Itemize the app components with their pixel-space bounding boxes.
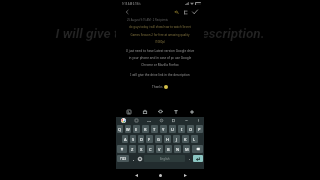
button[interactable]: Q [117, 125, 123, 133]
staticText: 9:15 AM 0.1K/s [122, 2, 141, 6]
button[interactable]: C [147, 145, 154, 153]
button[interactable]: Send [190, 7, 200, 17]
button[interactable]: J [173, 135, 180, 143]
button[interactable]: X [138, 145, 145, 153]
staticText: O [189, 127, 193, 132]
button[interactable]: Backspace [192, 145, 203, 153]
staticText: G [157, 137, 160, 142]
staticText: U [171, 127, 174, 132]
button[interactable]: Google [121, 118, 126, 123]
button[interactable]: Symbols [117, 155, 129, 162]
button[interactable]: U [169, 125, 176, 133]
staticText: Q [118, 127, 122, 132]
staticText: Thanks [152, 85, 164, 89]
button[interactable]: A [122, 135, 128, 143]
button[interactable]: Reply all [181, 8, 190, 17]
button[interactable]: F [146, 135, 153, 143]
button[interactable]: H [164, 135, 171, 143]
button[interactable]: Reply [172, 8, 181, 17]
staticText: J [176, 137, 178, 142]
staticText: Chrome or Mozilla Firefox [116, 63, 204, 67]
button[interactable]: Space [144, 155, 185, 162]
staticText: GIF [147, 119, 151, 122]
button[interactable]: L [191, 135, 198, 143]
staticText: U just need to have Latest version Googl… [116, 49, 204, 53]
staticText: M [185, 147, 189, 152]
button[interactable]: Insert image [124, 107, 133, 116]
staticText: . [189, 156, 190, 161]
staticText: S [132, 137, 135, 142]
button[interactable]: E [133, 125, 140, 133]
staticText: 25 August 9:15 AM · 2 Recipients [127, 18, 168, 22]
button[interactable]: R [142, 125, 149, 133]
button[interactable]: Recents [180, 170, 190, 180]
button[interactable]: Z [129, 145, 136, 153]
staticText: I will give the complete description. [0, 25, 320, 41]
staticText: Z [131, 147, 134, 152]
staticText: , [133, 156, 134, 161]
staticText: Games Season 2 for free at amazing quali… [116, 33, 204, 37]
staticText: W [126, 127, 130, 132]
staticText: L [193, 137, 196, 142]
button[interactable]: Emoji [136, 154, 143, 163]
staticText: English [160, 157, 170, 161]
button[interactable]: Home [155, 170, 165, 180]
button[interactable]: K [182, 135, 189, 143]
button[interactable]: More options [187, 107, 196, 116]
button[interactable]: Back [121, 6, 132, 17]
staticText: C [149, 147, 152, 152]
staticText: K [184, 137, 187, 142]
button[interactable]: D [138, 135, 144, 143]
button[interactable]: G [155, 135, 162, 143]
button[interactable]: Y [160, 125, 167, 133]
button[interactable]: Enter [193, 155, 203, 162]
staticText: N [176, 147, 180, 152]
staticText: (1080p) [116, 40, 204, 44]
staticText: P [198, 127, 201, 132]
staticText: B [167, 147, 170, 152]
button[interactable]: Clipboard [171, 118, 176, 123]
button[interactable]: M [183, 145, 190, 153]
staticText: I [181, 127, 183, 132]
staticText: E [135, 127, 138, 132]
button[interactable]: Settings [159, 118, 164, 123]
staticText: do guys today i will show how to watch S… [116, 25, 204, 29]
staticText: R [144, 127, 147, 132]
button[interactable]: Insert link [156, 107, 165, 116]
staticText: A [124, 137, 127, 142]
button[interactable]: W [125, 125, 131, 133]
button[interactable]: Comma [130, 154, 136, 163]
staticText: D [140, 137, 143, 142]
button[interactable]: I [178, 125, 185, 133]
staticText: T [153, 127, 156, 132]
button[interactable]: Shift [117, 145, 127, 153]
staticText: Y [162, 127, 165, 132]
staticText: ?123 [120, 157, 127, 161]
button[interactable]: B [165, 145, 172, 153]
staticText: X [140, 147, 143, 152]
button[interactable]: Attach file [140, 107, 149, 116]
staticText: H [166, 137, 169, 142]
button[interactable]: V [156, 145, 163, 153]
button[interactable]: GIF [146, 118, 151, 123]
button[interactable]: Stickers [134, 118, 139, 123]
button[interactable]: Period [186, 154, 192, 163]
button[interactable]: S [130, 135, 136, 143]
button[interactable]: P [196, 125, 203, 133]
staticText: V [158, 147, 161, 152]
button[interactable]: Text format [171, 107, 180, 116]
button[interactable]: Back [131, 170, 141, 180]
staticText: in your phone and in case of pc use Goog… [116, 56, 204, 60]
button[interactable]: Text editing [184, 118, 189, 123]
button[interactable]: O [187, 125, 194, 133]
staticText: F [148, 137, 151, 142]
button[interactable]: N [174, 145, 181, 153]
button[interactable]: T [151, 125, 158, 133]
staticText: I will give the drive link in the descri… [116, 73, 204, 77]
button[interactable]: Voice input [196, 118, 201, 123]
